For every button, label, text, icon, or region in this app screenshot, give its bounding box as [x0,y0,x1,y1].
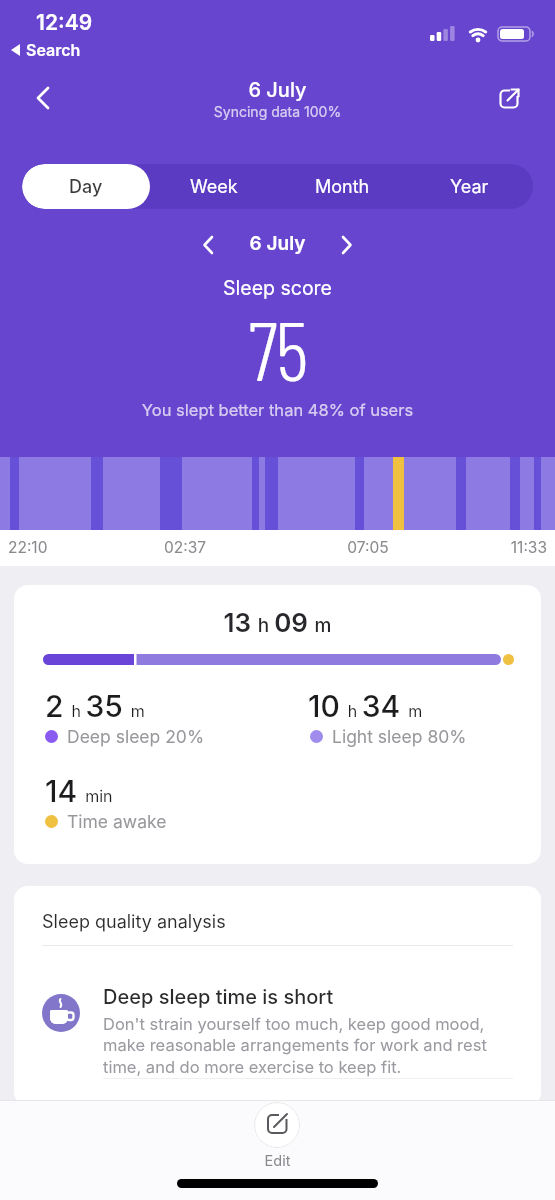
button[interactable]: Search [10,40,81,59]
staticText: 14 min [45,773,113,809]
button[interactable]: Month [278,164,406,209]
staticText: 07:05 [328,538,408,557]
staticText: 75 [0,299,555,397]
staticText: Day [69,176,103,198]
staticText: 22:10 [8,538,48,557]
staticText: 6 July [0,232,555,255]
staticText: Sleep score [0,276,555,300]
staticText: Year [450,176,489,198]
staticText: Week [190,176,238,198]
button[interactable]: Day [22,164,150,209]
staticText: You slept better than 48% of users [0,400,555,420]
button[interactable] [340,235,354,255]
staticText: 11:33 [467,538,547,557]
staticText: Syncing data 100% [0,103,555,120]
button[interactable] [499,86,523,110]
staticText: 10 h 34 m [308,688,423,724]
button[interactable] [254,1102,300,1148]
button[interactable]: Week [150,164,278,209]
staticText: Search [26,40,81,59]
staticText: 13 h 09 m [14,607,541,638]
staticText: 02:37 [145,538,225,557]
staticText: 2 h 35 m [45,688,145,724]
button[interactable] [201,235,215,255]
staticText: Deep sleep time is short [103,985,334,1009]
staticText: Don't strain yourself too much, keep goo… [103,1014,487,1077]
staticText: Light sleep 80% [332,726,467,747]
staticText: Edit [0,1152,555,1170]
staticText: Month [315,176,370,198]
button[interactable] [34,86,52,110]
staticText: 12:49 [36,10,93,35]
staticText: 6 July [0,78,555,102]
staticText: Time awake [67,811,167,832]
staticText: Sleep quality analysis [42,911,226,933]
button[interactable]: Year [406,164,533,209]
staticText: Deep sleep 20% [67,726,205,747]
